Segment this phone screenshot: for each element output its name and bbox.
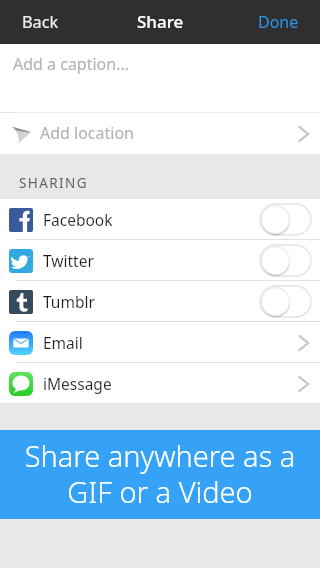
- button[interactable]: Back: [10, 3, 71, 41]
- button[interactable]: Add location: [0, 113, 320, 154]
- staticText: Share anywhere as a GIF or a Video: [0, 436, 320, 512]
- button[interactable]: Facebook: [0, 199, 320, 240]
- button[interactable]: Toggle: [260, 245, 311, 276]
- staticText: Add location: [40, 122, 135, 144]
- staticText: Tumblr: [43, 291, 95, 312]
- button[interactable]: Twitter: [0, 240, 320, 281]
- staticText: Share: [137, 10, 184, 33]
- button[interactable]: Share anywhere as a GIF or a Video: [0, 430, 320, 519]
- staticText: Email: [43, 332, 83, 353]
- button[interactable]: Email: [0, 322, 320, 363]
- staticText: Back: [22, 11, 59, 33]
- staticText: SHARING: [19, 174, 88, 192]
- button[interactable]: Tumblr: [0, 281, 320, 322]
- button[interactable]: Done: [247, 3, 310, 41]
- button[interactable]: Toggle: [260, 286, 311, 317]
- staticText: Add a caption...: [13, 53, 130, 75]
- staticText: iMessage: [43, 373, 112, 394]
- button[interactable]: iMessage: [0, 363, 320, 404]
- button[interactable]: Toggle: [260, 204, 311, 235]
- staticText: Facebook: [43, 209, 113, 230]
- button[interactable]: Add a caption...: [0, 44, 320, 112]
- staticText: Twitter: [43, 250, 94, 271]
- staticText: Done: [258, 11, 299, 33]
